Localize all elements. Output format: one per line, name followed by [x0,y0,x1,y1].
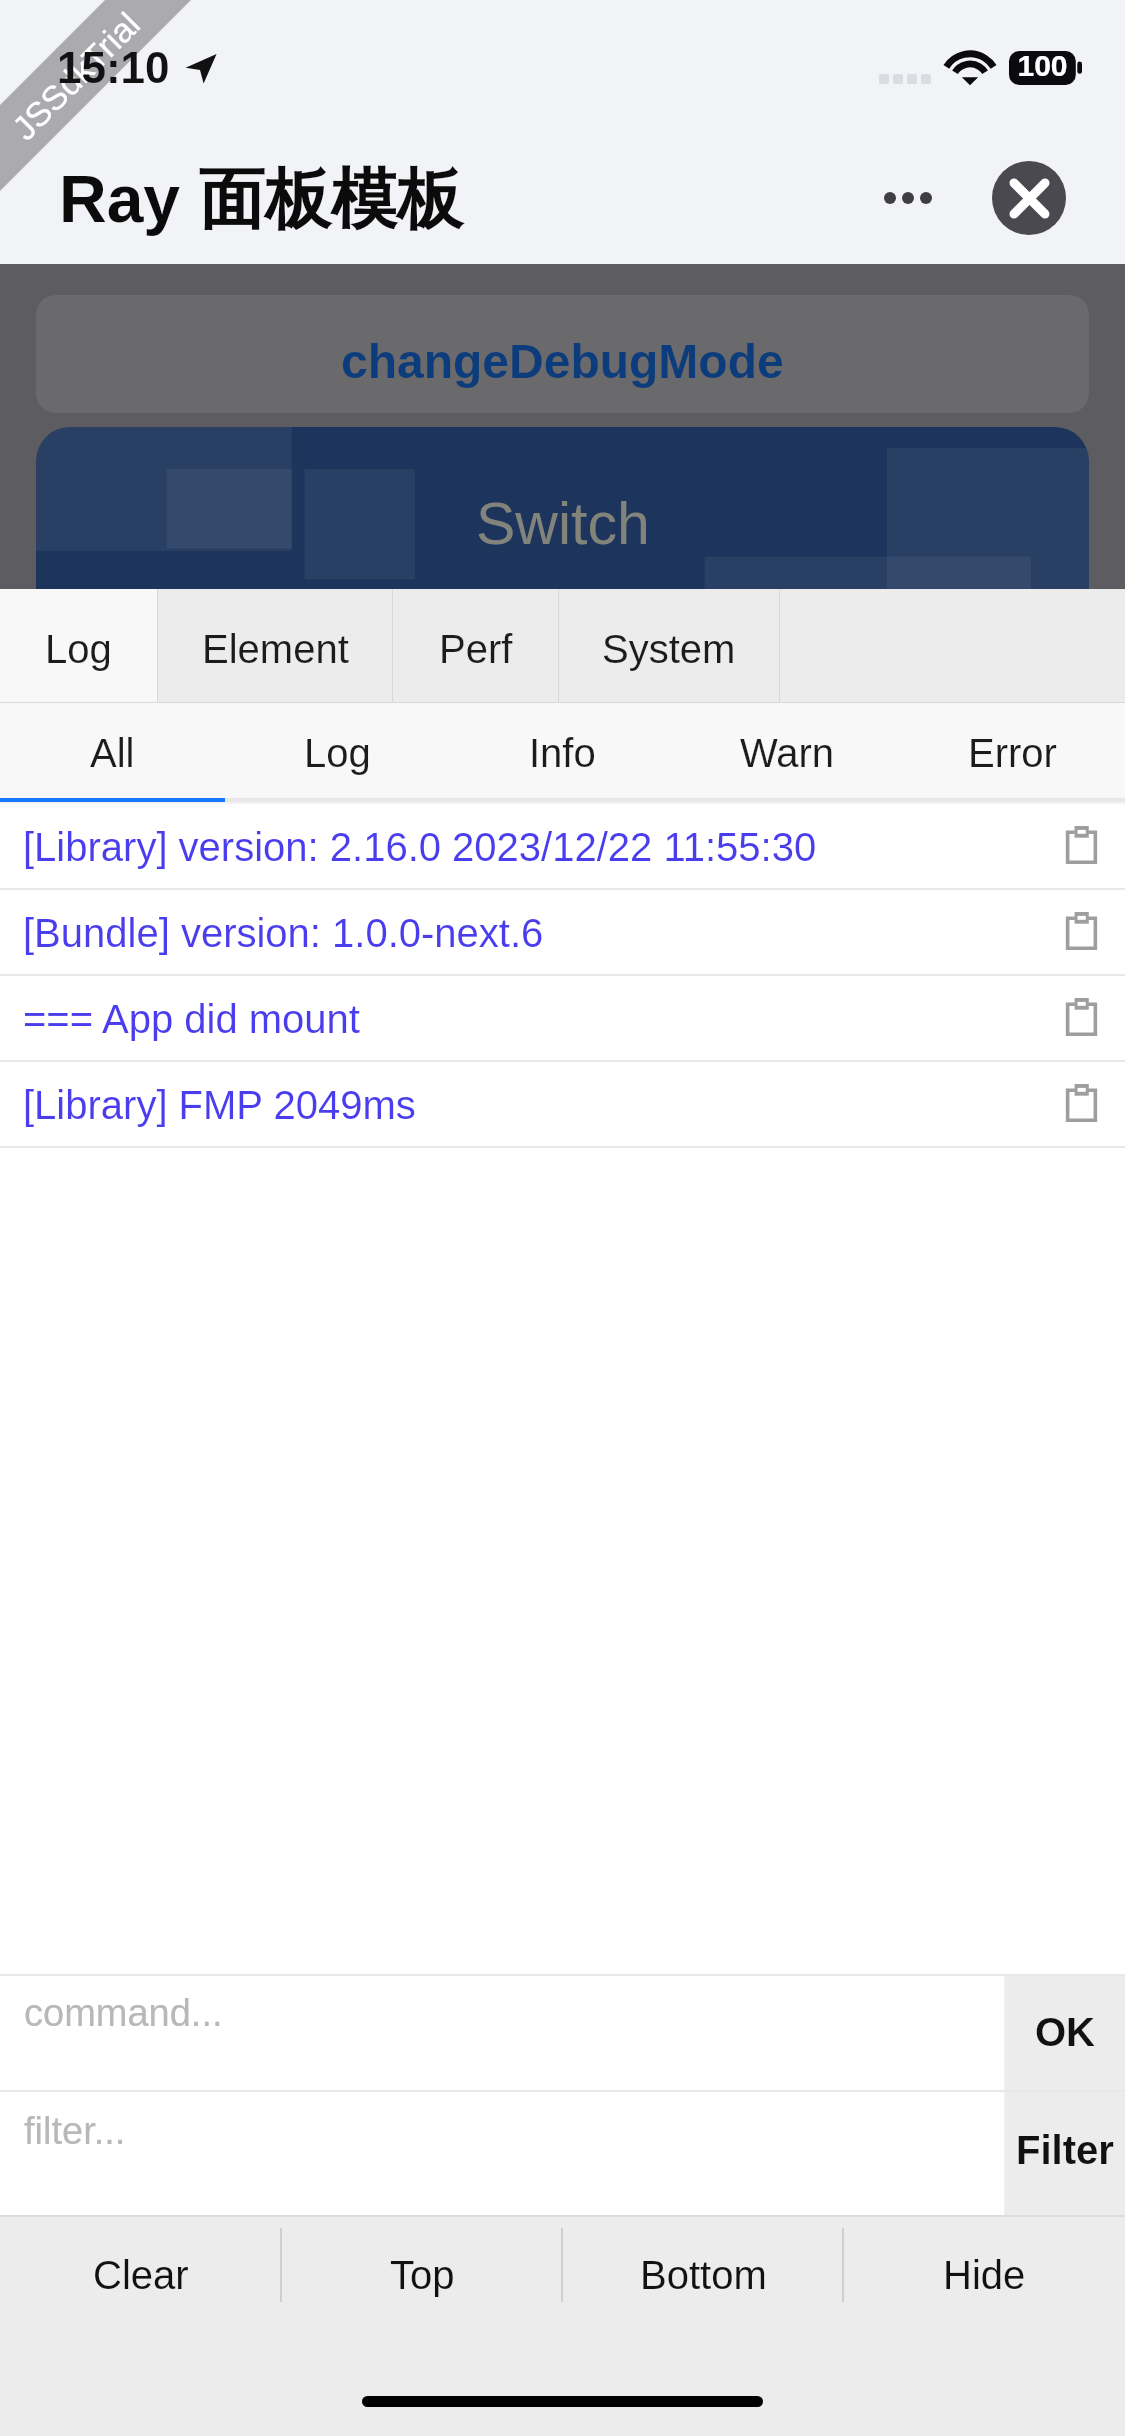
button[interactable]: System [559,589,779,703]
staticText: All [90,731,135,776]
staticText: Filter [1016,2128,1114,2173]
staticText: Warn [740,731,835,776]
button[interactable]: Close [992,161,1066,235]
button[interactable]: More options [866,162,950,234]
button[interactable]: All [0,703,225,802]
staticText: === App did mount [23,997,360,1042]
staticText: System [602,627,736,672]
button[interactable]: Hide [844,2217,1125,2339]
button[interactable]: Element [158,589,392,703]
staticText: [Library] FMP 2049ms [23,1083,416,1128]
button[interactable]: Info [450,703,675,802]
staticText: Element [202,627,349,672]
staticText: Perf [439,627,513,672]
staticText: [Bundle] version: 1.0.0-next.6 [23,911,544,956]
button[interactable]: Perf [393,589,558,703]
staticText: OK [1035,2010,1095,2055]
button[interactable]: Error [900,703,1125,802]
button[interactable]: [Library] version: 2.16.0 2023/12/22 11:… [0,804,1125,890]
button[interactable]: command... [0,1976,1004,2090]
button[interactable]: Top [282,2217,563,2339]
staticText: Clear [93,2253,189,2298]
button[interactable]: Filter [1005,2092,1125,2215]
button[interactable]: [Bundle] version: 1.0.0-next.6 [0,890,1125,976]
staticText: [Library] version: 2.16.0 2023/12/22 11:… [23,825,817,870]
staticText: JSSdkTrial [5,5,147,147]
staticText: command... [24,1992,223,2034]
button[interactable]: changeDebugMode [36,295,1089,413]
staticText: Top [390,2253,455,2298]
button[interactable]: filter... [0,2092,1004,2215]
button[interactable]: OK [1005,1976,1125,2090]
staticText: Log [45,627,112,672]
staticText: Hide [943,2253,1026,2298]
button[interactable]: Clear [0,2217,282,2339]
button[interactable]: Log [225,703,450,802]
button[interactable]: Warn [675,703,900,802]
staticText: Bottom [640,2253,767,2298]
button[interactable]: Bottom [563,2217,844,2339]
button[interactable]: Log [0,589,157,703]
staticText: changeDebugMode [341,335,784,389]
staticText: Info [529,731,596,776]
staticText: Log [304,731,371,776]
staticText: Switch [476,491,650,557]
staticText: 15:10 [57,43,170,92]
staticText: Error [968,731,1057,776]
staticText: Ray 面板模板 [59,158,463,241]
staticText: 100 [1009,49,1076,83]
button[interactable]: === App did mount [0,976,1125,1062]
staticText: filter... [24,2110,126,2152]
button[interactable]: [Library] FMP 2049ms [0,1062,1125,1148]
